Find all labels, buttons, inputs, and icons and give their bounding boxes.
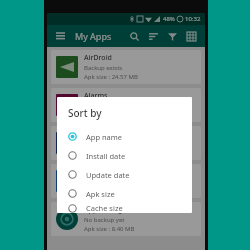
staticText: Apk size : 41.20 MB bbox=[84, 149, 138, 157]
button[interactable]: Update date bbox=[68, 165, 184, 184]
button[interactable]: Grid view bbox=[183, 28, 199, 44]
button[interactable]: Cache size bbox=[68, 203, 184, 213]
staticText: 48% bbox=[163, 15, 175, 23]
staticText: Backup exists bbox=[84, 102, 123, 110]
staticText: Apk size : 20.94 MB bbox=[84, 187, 138, 195]
button[interactable]: Open navigation drawer bbox=[53, 29, 67, 43]
staticText: No backup yet bbox=[84, 140, 125, 148]
staticText: Backup exists bbox=[84, 64, 123, 72]
staticText: Amazon bbox=[84, 129, 112, 139]
staticText: No backup yet bbox=[84, 216, 125, 224]
staticText: Update date bbox=[86, 170, 130, 180]
button[interactable]: Alarms bbox=[51, 88, 201, 122]
staticText: AirDroid bbox=[84, 53, 112, 63]
button[interactable]: Filter bbox=[164, 28, 180, 44]
staticText: Antenna bbox=[84, 167, 113, 177]
button[interactable]: Antenna bbox=[51, 164, 201, 198]
button[interactable]: Amazon bbox=[51, 126, 201, 160]
staticText: Apk size : 24.57 MB bbox=[84, 73, 138, 81]
button[interactable]: App Manager bbox=[51, 202, 201, 236]
button[interactable]: Sort bbox=[145, 28, 161, 44]
button[interactable]: Install date bbox=[68, 146, 184, 165]
staticText: Backup exists bbox=[84, 178, 123, 186]
staticText: Alarms bbox=[84, 91, 108, 101]
staticText: My Apps bbox=[75, 30, 112, 42]
staticText: Sort by bbox=[68, 106, 102, 120]
button[interactable]: AirDroid bbox=[51, 50, 201, 84]
staticText: Cache size bbox=[86, 203, 123, 213]
staticText: App name bbox=[86, 132, 123, 142]
button[interactable]: Apk size bbox=[68, 184, 184, 203]
staticText: Apk size bbox=[86, 189, 115, 199]
staticText: Install date bbox=[86, 151, 126, 161]
button[interactable]: Search bbox=[126, 28, 142, 44]
staticText: Apk size : 3.12 MB bbox=[84, 111, 135, 119]
staticText: 10:32 bbox=[185, 15, 201, 23]
staticText: Apk size : 8.40 MB bbox=[84, 225, 135, 233]
staticText: App Manager bbox=[84, 205, 130, 215]
button[interactable]: App name bbox=[68, 127, 184, 146]
